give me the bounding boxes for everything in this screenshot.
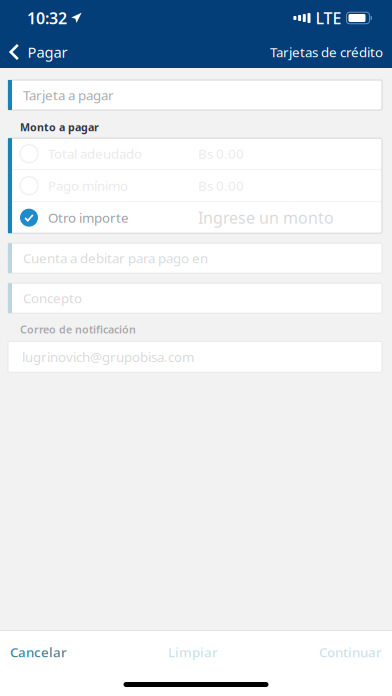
button[interactable]: Tarjeta a pagar	[8, 80, 382, 110]
staticText: Concepto	[23, 289, 82, 307]
staticText: Total adeudado	[48, 145, 142, 162]
button[interactable]: Pagar	[0, 37, 67, 67]
staticText: Bs 0.00	[198, 177, 244, 194]
staticText: Ingrese un monto	[198, 207, 334, 228]
staticText: Tarjeta a pagar	[23, 86, 114, 104]
staticText: Cancelar	[10, 643, 67, 661]
button[interactable]: Otro importe	[8, 202, 382, 233]
staticText: Correo de notificación	[20, 322, 136, 336]
staticText: LTE	[315, 7, 341, 29]
button[interactable]: Total adeudado	[8, 138, 382, 169]
button[interactable]: Limpiar	[158, 631, 228, 673]
staticText: 10:32	[27, 7, 67, 29]
button[interactable]: Continuar	[309, 631, 392, 673]
button[interactable]: Cancelar	[0, 631, 77, 673]
staticText: Bs 0.00	[198, 145, 244, 162]
staticText: Limpiar	[168, 643, 218, 661]
button[interactable]: Concepto	[8, 283, 382, 313]
staticText: Cuenta a debitar para pago en	[23, 249, 208, 267]
staticText: Tarjetas de crédito	[270, 43, 383, 61]
button[interactable]: Pago mínimo	[8, 170, 382, 201]
button[interactable]: Cuenta a debitar para pago en	[8, 243, 382, 273]
staticText: Pagar	[27, 42, 67, 62]
staticText: lugrinovich@grupobisa.com	[22, 348, 194, 366]
button[interactable]: Tarjetas de crédito	[270, 38, 392, 66]
staticText: Otro importe	[48, 209, 129, 226]
button[interactable]: lugrinovich@grupobisa.com	[8, 341, 382, 372]
staticText: Continuar	[319, 643, 382, 661]
staticText: Pago mínimo	[48, 177, 128, 194]
staticText: Monto a pagar	[20, 120, 99, 134]
